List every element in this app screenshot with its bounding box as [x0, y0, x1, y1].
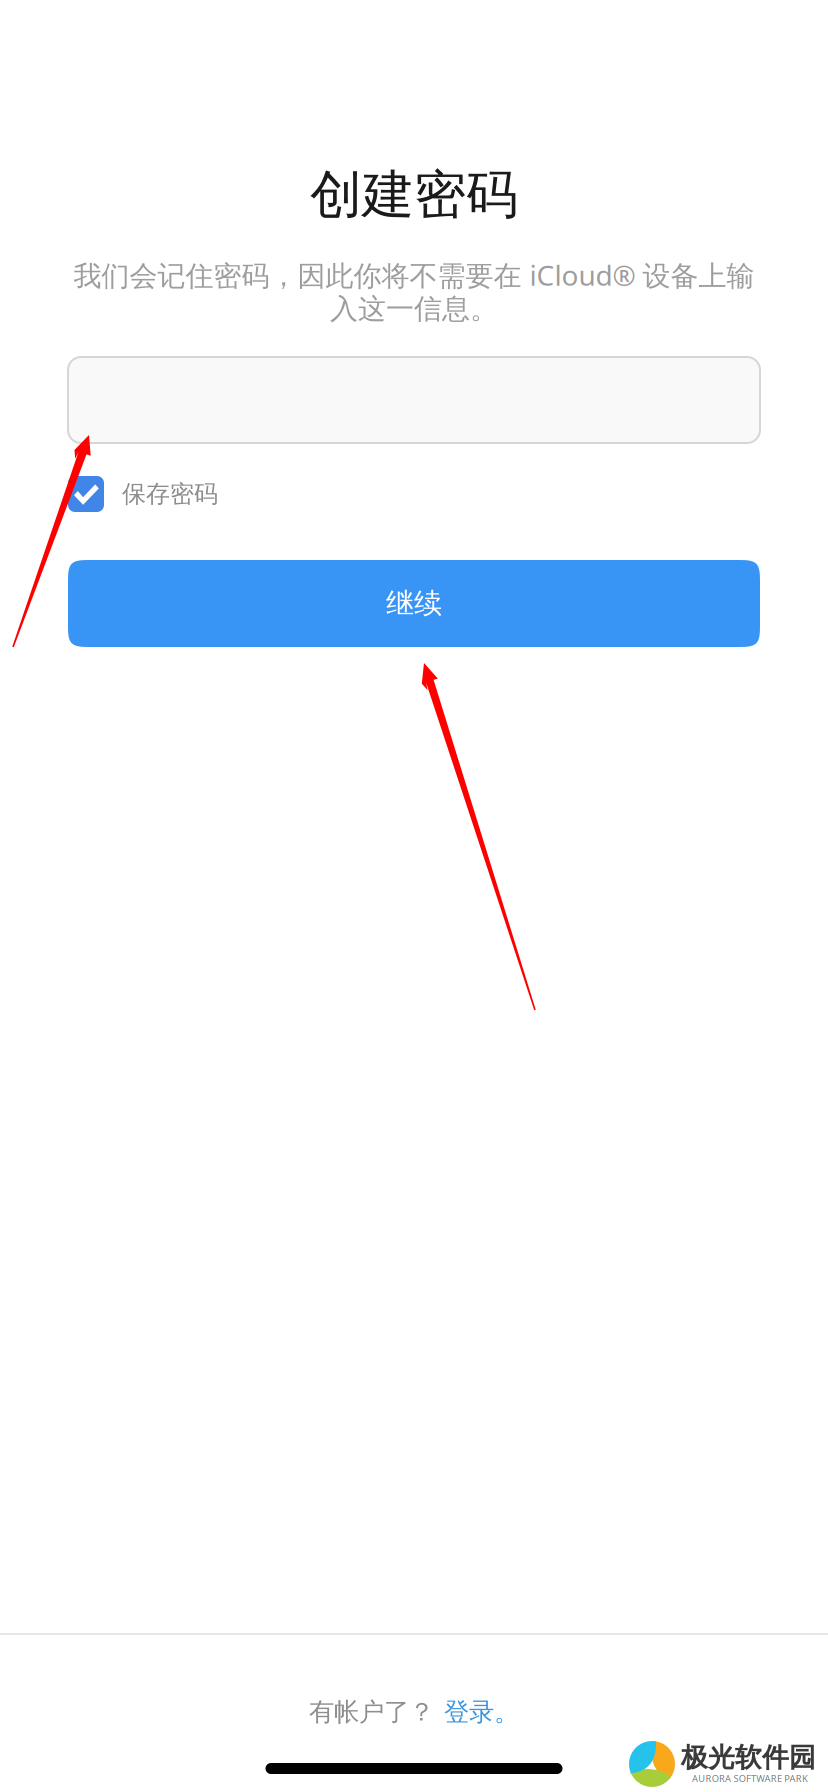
button[interactable]: 保存密码: [68, 476, 760, 512]
button[interactable]: Password field: [68, 357, 760, 443]
staticText: 入这一信息。: [330, 292, 498, 326]
staticText: 保存密码: [122, 479, 218, 509]
button[interactable]: 继续: [68, 560, 760, 647]
staticText: 继续: [386, 586, 442, 621]
staticText: AURORA SOFTWARE PARK: [692, 1772, 808, 1785]
staticText: 创建密码: [310, 163, 518, 227]
button[interactable]: 有帐户了？: [0, 1695, 828, 1729]
staticText: 有帐户了？: [309, 1696, 434, 1727]
staticText: 极光软件园: [681, 1741, 816, 1774]
staticText: 登录。: [444, 1696, 519, 1727]
staticText: 我们会记住密码，因此你将不需要在 iCloud® 设备上输: [73, 256, 754, 294]
